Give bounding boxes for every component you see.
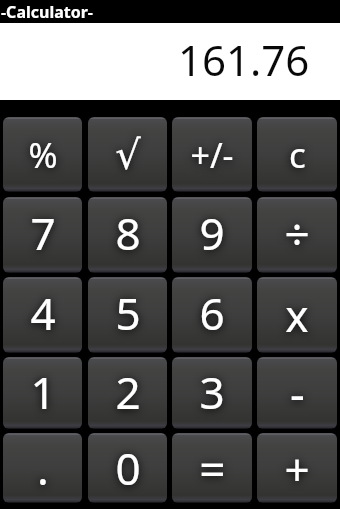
staticText: ÷ (284, 203, 310, 263)
staticText: + (284, 439, 310, 499)
staticText: c (289, 131, 306, 179)
button[interactable]: 8 (88, 197, 167, 273)
button[interactable]: ÷ (257, 197, 337, 273)
staticText: 7 (30, 203, 56, 263)
button[interactable]: x (257, 277, 337, 353)
staticText: 0 (115, 438, 141, 498)
button[interactable]: - (257, 357, 337, 429)
staticText: x (285, 285, 309, 345)
staticText: 4 (30, 283, 56, 343)
button[interactable]: . (3, 433, 82, 503)
staticText: √ (115, 132, 141, 179)
staticText: % (28, 131, 58, 179)
button[interactable]: +/- (172, 117, 252, 192)
staticText: 1 (30, 362, 56, 422)
button[interactable]: % (3, 117, 82, 192)
button[interactable]: + (257, 433, 337, 503)
staticText: 9 (199, 203, 225, 263)
button[interactable]: 7 (3, 197, 82, 273)
button[interactable]: 5 (88, 277, 167, 353)
button[interactable]: 1 (3, 357, 82, 429)
staticText: = (199, 437, 226, 500)
staticText: . (37, 438, 49, 498)
staticText: 8 (115, 203, 141, 263)
staticText: -Calculator- (1, 1, 93, 23)
staticText: - (290, 361, 305, 424)
staticText: 6 (199, 283, 225, 343)
staticText: 5 (115, 283, 141, 343)
button[interactable]: c (257, 117, 337, 192)
staticText: +/- (190, 132, 234, 178)
staticText: 3 (199, 362, 225, 422)
staticText: 2 (115, 362, 141, 422)
button[interactable]: 3 (172, 357, 252, 429)
button[interactable]: 4 (3, 277, 82, 353)
button[interactable]: 2 (88, 357, 167, 429)
button[interactable]: = (172, 433, 252, 503)
staticText: 161.76 (178, 31, 310, 88)
button[interactable]: 9 (172, 197, 252, 273)
button[interactable]: 0 (88, 433, 167, 503)
button[interactable]: 6 (172, 277, 252, 353)
button[interactable]: √ (88, 117, 167, 192)
